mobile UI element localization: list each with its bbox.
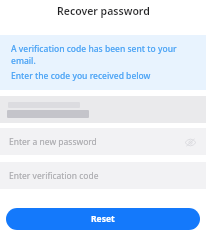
staticText: Enter verification code [9, 170, 99, 182]
button[interactable]: Enter verification code [0, 162, 206, 189]
button[interactable]: Enter a new password [0, 128, 206, 155]
staticText: Enter a new password [9, 136, 97, 148]
button[interactable] [0, 96, 206, 123]
button[interactable]: Reset [6, 208, 200, 230]
staticText: A verification code has been sent to you… [11, 43, 195, 67]
staticText: Reset [91, 213, 115, 225]
staticText: Recover password [57, 4, 150, 18]
staticText: Enter the code you received below [11, 70, 151, 82]
button[interactable]: Show password [183, 135, 197, 149]
